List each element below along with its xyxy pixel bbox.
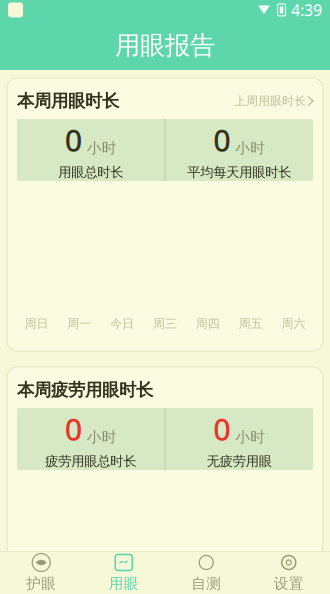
staticText: 小时: [235, 139, 265, 157]
staticText: 上周用眼时长: [234, 94, 306, 108]
staticText: 0: [65, 119, 83, 160]
staticText: 周五: [239, 316, 263, 331]
staticText: 0: [65, 408, 83, 449]
staticText: 设置: [274, 574, 304, 592]
staticText: 自测: [191, 574, 221, 592]
staticText: 今日: [110, 316, 134, 331]
button[interactable]: 上周用眼时长: [234, 94, 313, 108]
staticText: 小时: [87, 428, 117, 446]
staticText: 本周疲劳用眼时长: [17, 379, 153, 401]
staticText: 周三: [153, 316, 177, 331]
staticText: 用眼报告: [115, 30, 215, 61]
staticText: 无疲劳用眼: [207, 453, 272, 470]
button[interactable]: 用眼: [82, 551, 165, 594]
button[interactable]: 设置: [247, 551, 330, 594]
staticText: 周一: [67, 316, 91, 331]
staticText: 用眼: [109, 574, 139, 592]
staticText: 小时: [87, 139, 117, 157]
button[interactable]: 自测: [165, 551, 247, 594]
staticText: 周日: [24, 316, 48, 331]
staticText: 0: [213, 408, 231, 449]
staticText: 小时: [235, 428, 265, 446]
staticText: 4:39: [291, 0, 322, 20]
staticText: 用眼总时长: [58, 164, 123, 181]
staticText: 周六: [282, 316, 306, 331]
staticText: 疲劳用眼总时长: [45, 453, 136, 470]
staticText: 护眼: [26, 574, 56, 592]
button[interactable]: 护眼: [0, 551, 82, 594]
staticText: 周四: [196, 316, 220, 331]
staticText: 平均每天用眼时长: [187, 164, 291, 181]
staticText: 0: [213, 119, 231, 160]
staticText: 本周用眼时长: [17, 90, 119, 112]
